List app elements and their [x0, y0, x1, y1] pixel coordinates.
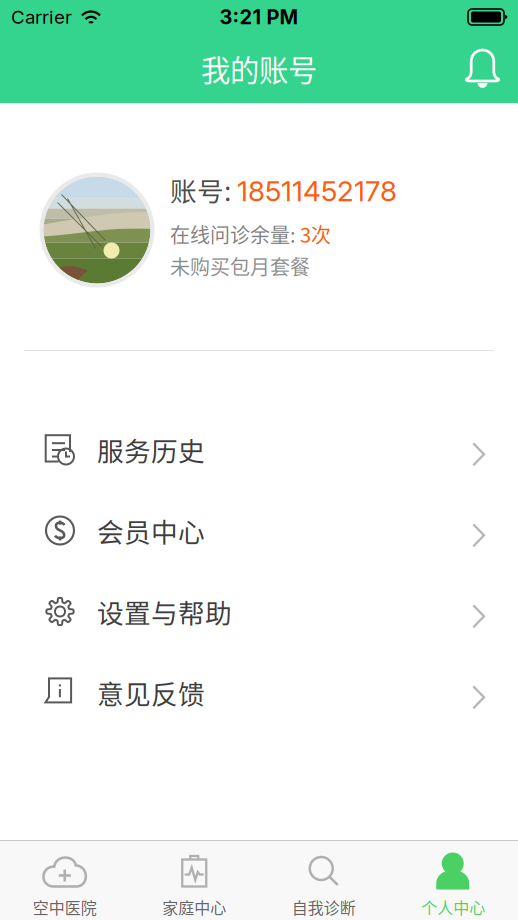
button[interactable]: 空中医院 [0, 841, 129, 920]
staticText: 3:21 PM [219, 5, 298, 29]
button[interactable]: 个人中心 [388, 841, 518, 920]
staticText: 服务历史 [97, 430, 205, 469]
staticText: 我的账号 [201, 47, 317, 90]
staticText: 18511452178 [237, 174, 397, 208]
staticText: 未购买包月套餐 [170, 251, 310, 280]
button[interactable]: 设置与帮助 [0, 571, 518, 652]
staticText: 设置与帮助 [97, 592, 232, 631]
button[interactable]: 自我诊断 [259, 841, 388, 920]
staticText: 个人中心 [421, 895, 485, 919]
staticText: 自我诊断 [292, 895, 356, 919]
staticText: Carrier [11, 6, 72, 28]
staticText: 家庭中心 [162, 895, 226, 919]
staticText: 会员中心 [97, 511, 205, 550]
staticText: 账号: [170, 170, 237, 209]
button[interactable]: 意见反馈 [0, 652, 518, 733]
staticText: 空中医院 [33, 895, 97, 919]
staticText: 3次 [300, 219, 331, 248]
button[interactable]: Notifications [465, 40, 518, 97]
button[interactable]: 会员中心 [0, 490, 518, 571]
button[interactable]: 服务历史 [0, 409, 518, 490]
staticText: 意见反馈 [97, 673, 205, 712]
button[interactable]: 家庭中心 [129, 841, 259, 920]
staticText: 在线问诊余量: [170, 219, 300, 248]
